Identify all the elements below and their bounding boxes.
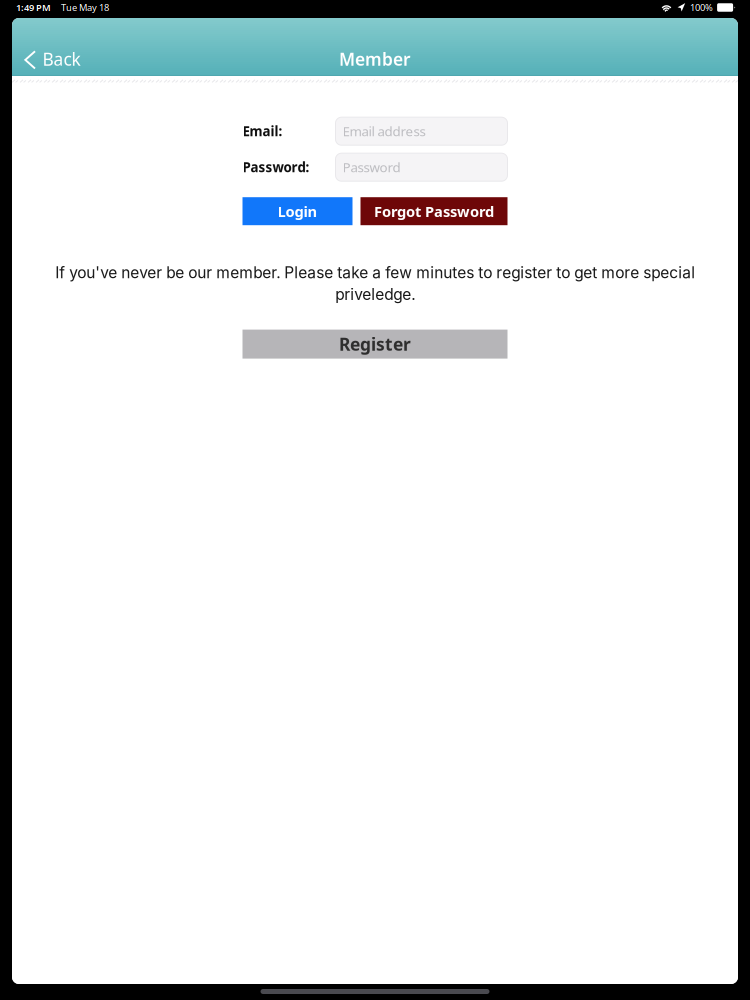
button[interactable]: Forgot Password <box>360 197 507 225</box>
staticText: Email address <box>342 122 425 140</box>
staticText: Forgot Password <box>374 201 494 221</box>
button[interactable]: Back <box>12 41 90 77</box>
button[interactable]: Login <box>242 197 352 225</box>
staticText: Password: <box>242 158 309 176</box>
staticText: 100% <box>690 1 713 14</box>
staticText: Email: <box>242 122 282 140</box>
staticText: Register <box>339 333 411 356</box>
staticText: Back <box>42 47 80 70</box>
staticText: Login <box>277 201 317 221</box>
button[interactable]: Email address <box>335 117 507 145</box>
staticText: If you've never be our member. Please ta… <box>55 263 695 304</box>
button[interactable]: Register <box>242 330 507 359</box>
staticText: Tue May 18 <box>61 1 109 14</box>
staticText: Password <box>342 158 400 176</box>
staticText: 1:49 PM <box>16 1 51 14</box>
staticText: Member <box>339 47 411 70</box>
button[interactable]: Password <box>335 153 507 181</box>
